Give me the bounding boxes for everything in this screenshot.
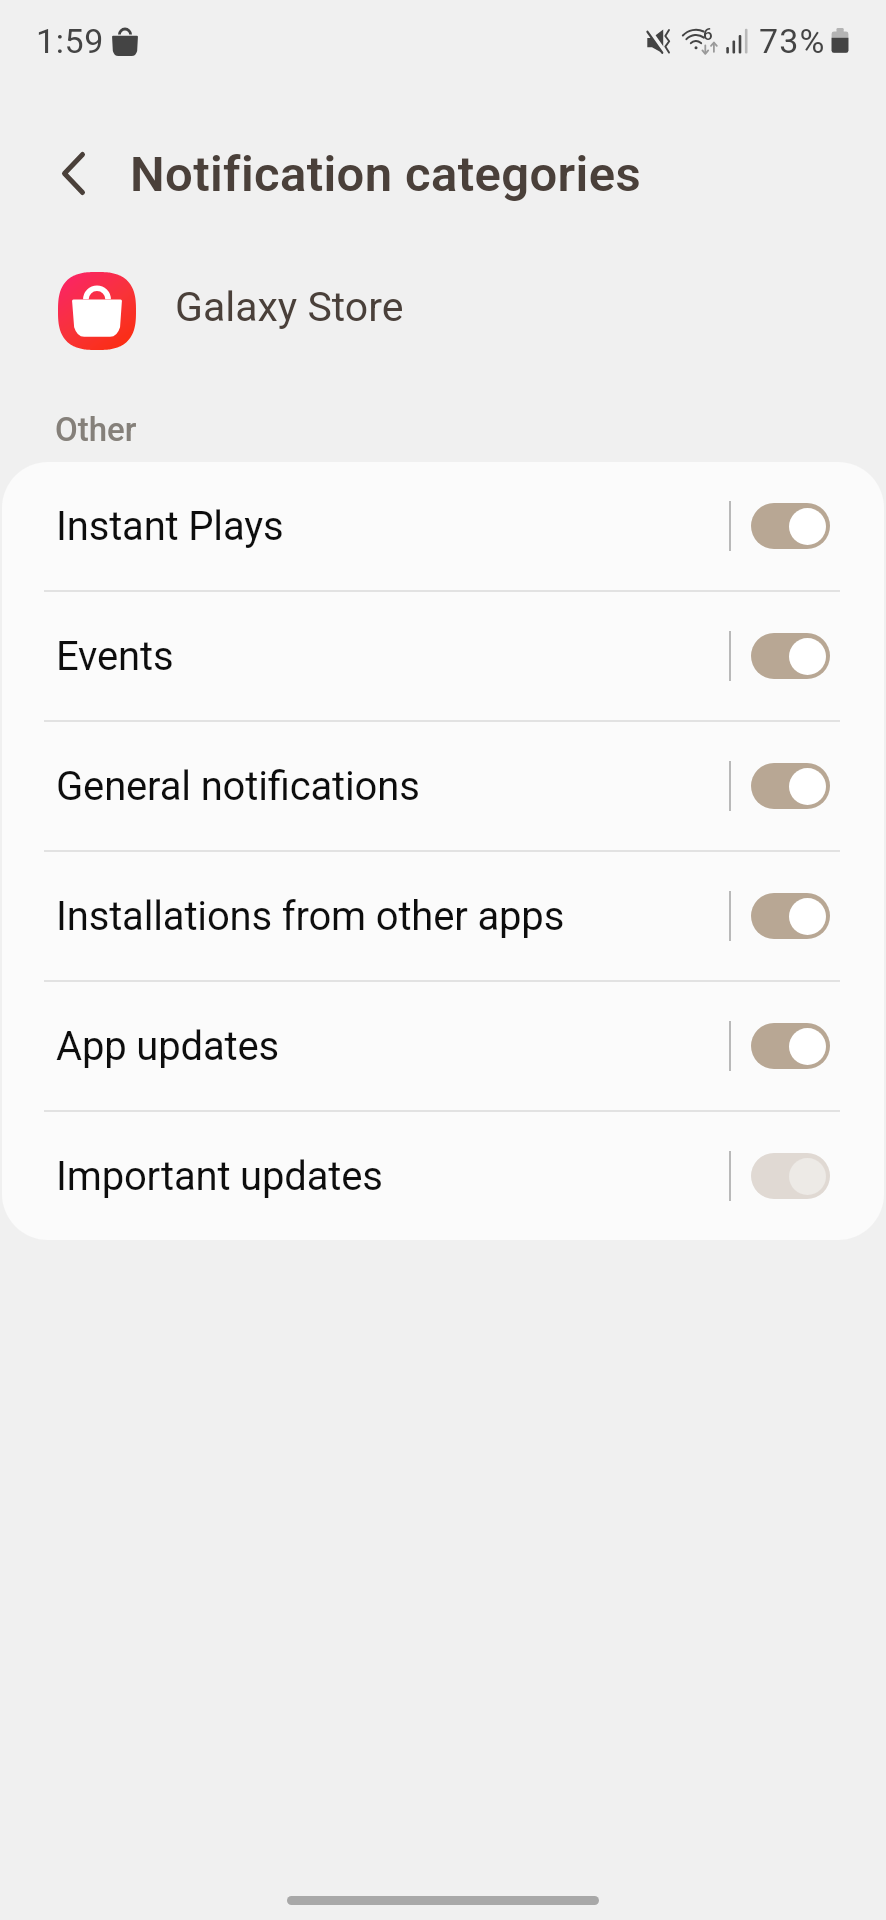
staticText: Events [56, 633, 174, 680]
staticText: Other [55, 410, 137, 449]
button[interactable]: Galaxy Store [0, 258, 886, 362]
staticText: Instant Plays [56, 503, 284, 550]
staticText: App updates [56, 1023, 279, 1070]
button[interactable]: Important updates [2, 1112, 884, 1240]
staticText: General notifications [56, 763, 420, 810]
button[interactable]: Navigate up [39, 139, 107, 207]
button[interactable]: Events [2, 592, 884, 720]
button[interactable]: Events toggle [751, 633, 830, 679]
staticText: Installations from other apps [56, 893, 565, 940]
staticText: Galaxy Store [175, 283, 404, 331]
staticText: 1:59 [36, 21, 104, 61]
button[interactable]: Important updates toggle [751, 1153, 830, 1199]
button[interactable]: App updates toggle [751, 1023, 830, 1069]
button[interactable]: General notifications toggle [751, 763, 830, 809]
staticText: 6 [703, 24, 713, 44]
staticText: Important updates [56, 1153, 383, 1200]
button[interactable]: Instant Plays [2, 462, 884, 590]
staticText: 73% [759, 21, 826, 61]
button[interactable]: Instant Plays toggle [751, 503, 830, 549]
button[interactable]: General notifications [2, 722, 884, 850]
button[interactable]: App updates [2, 982, 884, 1110]
button[interactable]: Installations from other apps [2, 852, 884, 980]
staticText: Notification categories [130, 145, 642, 203]
button[interactable]: Installations from other apps toggle [751, 893, 830, 939]
